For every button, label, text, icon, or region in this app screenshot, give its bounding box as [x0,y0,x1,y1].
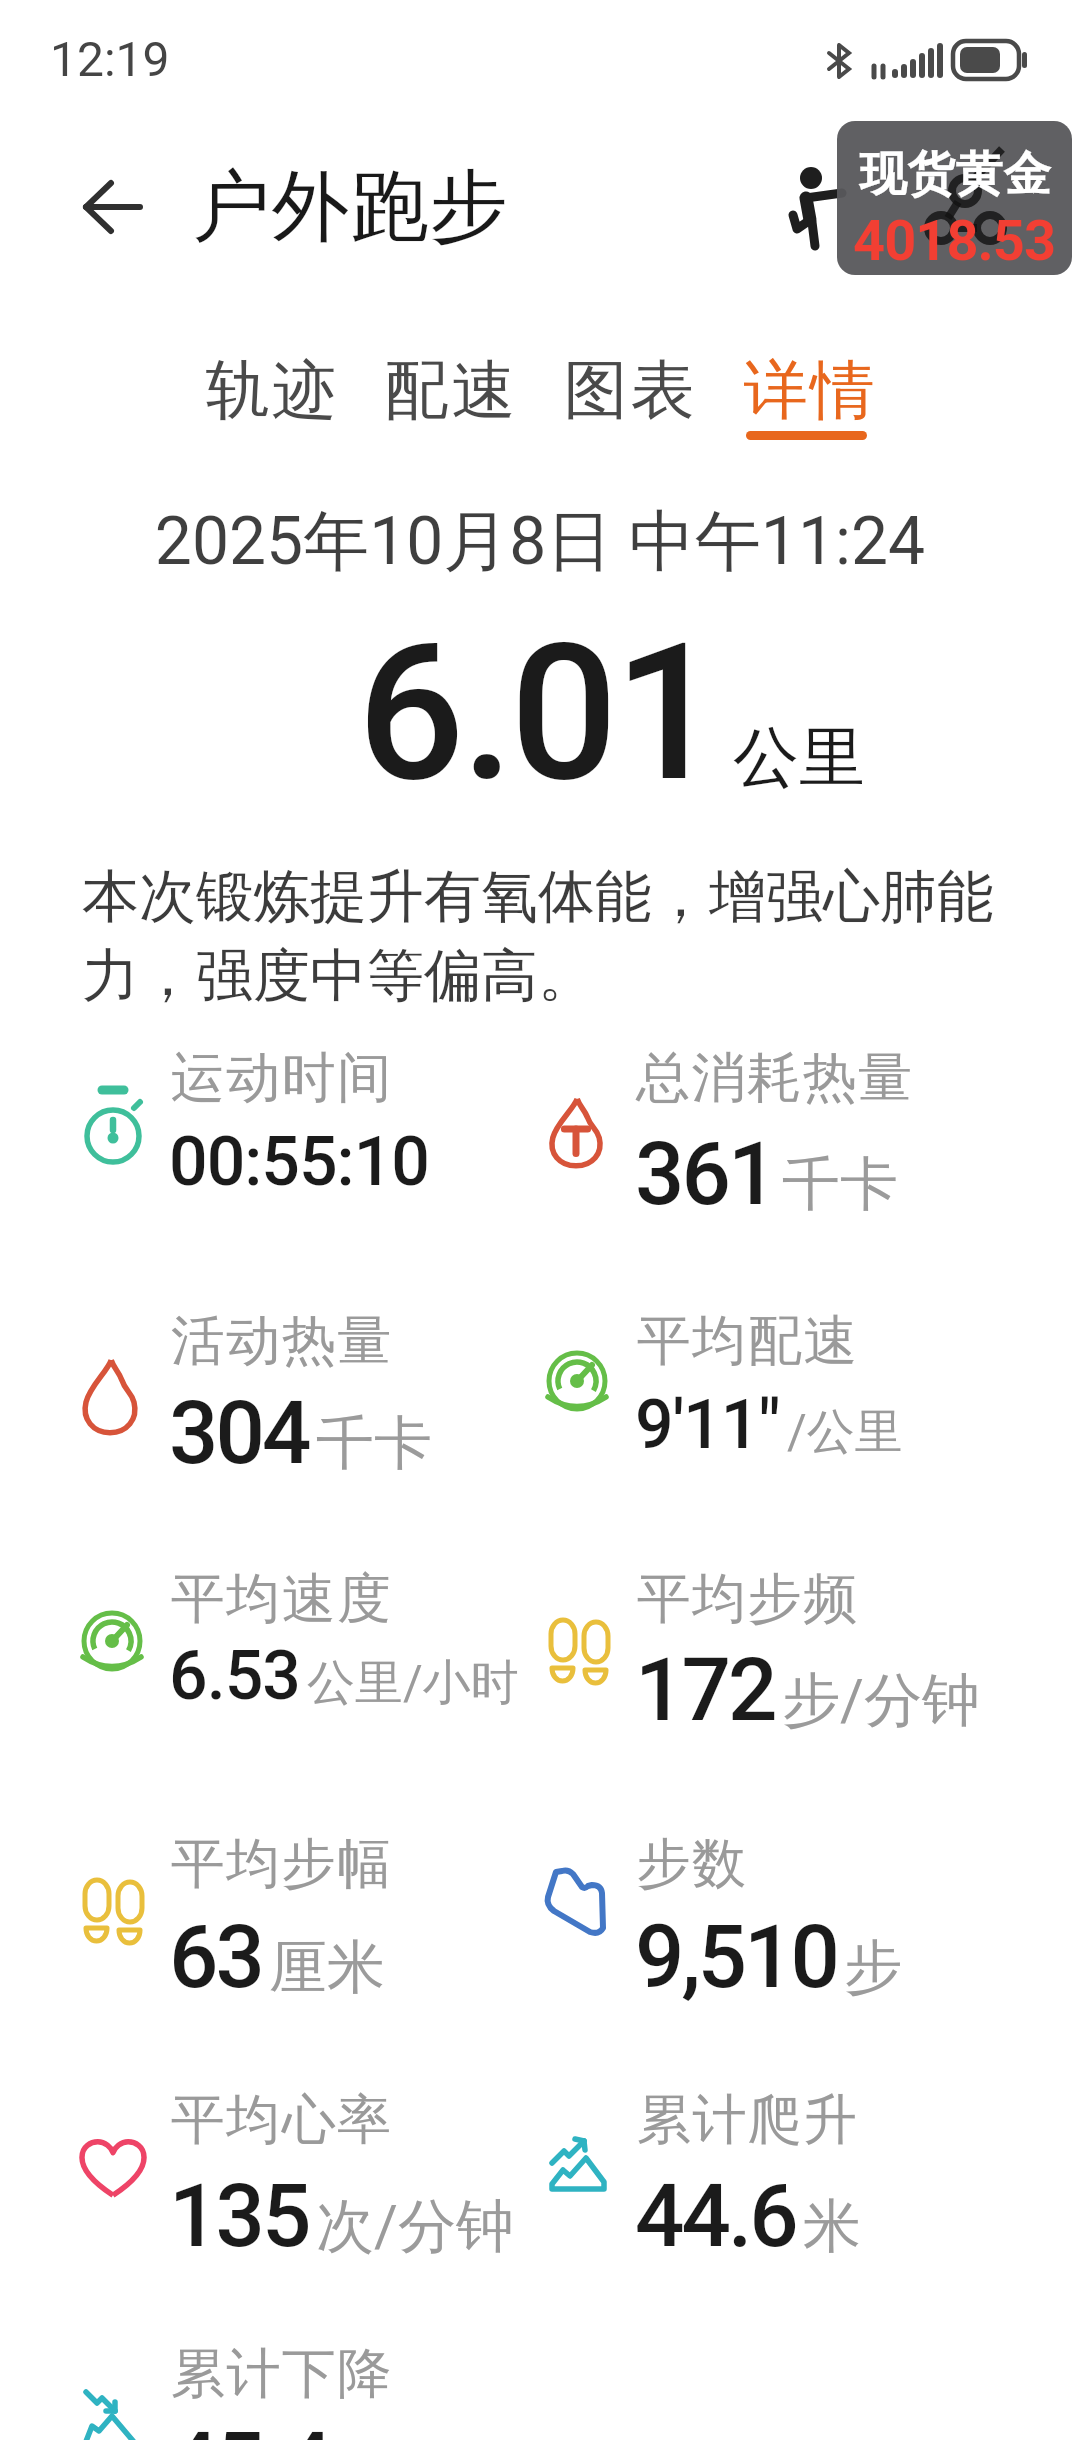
staticText: 平均速度 [170,1565,392,1633]
staticText: 运动时间 [170,1044,392,1112]
staticText: 累计下降 [170,2340,392,2408]
staticText: 活动热量 [170,1307,392,1375]
staticText: 现货黄金 [859,145,1051,204]
button[interactable]: 现货黄金 [837,121,1072,275]
staticText: 6.01 [357,602,719,825]
staticText: 44.6 [635,2165,796,2267]
staticText: 平均心率 [170,2086,392,2154]
staticText: 9,510 [635,1906,837,2008]
staticText: 步数 [636,1830,747,1898]
staticText: 45.4 [169,2413,330,2440]
button[interactable]: 配速 [383,350,517,431]
staticText: 6.53 [169,1636,300,1716]
staticText: 总消耗热量 [636,1044,914,1112]
staticText: 平均配速 [636,1307,858,1375]
staticText: 172 [635,1639,775,1741]
staticText: 厘米 [269,1931,385,2004]
button[interactable] [782,158,846,250]
staticText: 12:19 [50,31,170,87]
staticText: 公里 [733,716,865,799]
staticText: 本次锻炼提升有氧体能，增强心肺能力，强度中等偏高。 [82,861,1022,1012]
button[interactable] [78,172,148,242]
staticText: 次/分钟 [316,2190,514,2263]
staticText: /公里 [787,1402,903,1462]
staticText: 4018.53 [853,208,1056,274]
staticText: 2025年10月8日 中午11:24 [0,500,1080,583]
staticText: 平均步幅 [170,1830,392,1898]
staticText: 63 [169,1906,262,2008]
staticText: 135 [169,2165,309,2267]
staticText: 千卡 [316,1407,432,1480]
staticText: 米 [803,2190,861,2263]
staticText: 00:55:10 [169,1122,429,1202]
staticText: 平均步频 [636,1565,858,1633]
staticText: 361 [635,1123,775,1225]
staticText: 步/分钟 [782,1664,980,1737]
staticText: 累计爬升 [636,2086,858,2154]
staticText: 9'11" [635,1385,780,1465]
staticText: 户外跑步 [192,158,508,256]
button[interactable]: 轨迹 [204,350,338,431]
staticText: 304 [169,1382,309,1484]
button[interactable]: 图表 [562,350,696,431]
staticText: 步 [844,1931,902,2004]
staticText: 千卡 [782,1148,898,1221]
button[interactable]: 详情 [742,350,876,431]
staticText: 公里/小时 [307,1653,519,1713]
